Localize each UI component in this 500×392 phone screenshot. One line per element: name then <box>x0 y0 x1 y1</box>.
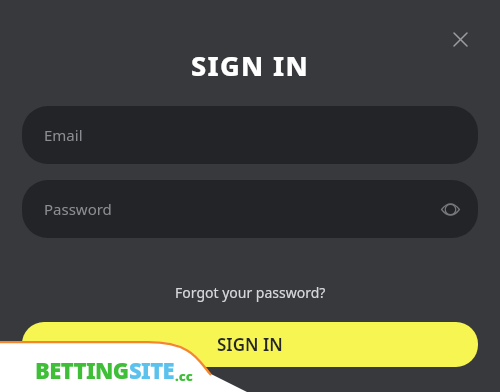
button[interactable]: SIGN IN <box>22 322 478 367</box>
button[interactable]: Show password <box>433 192 467 226</box>
staticText: SIGN IN <box>217 333 283 356</box>
staticText: SIGN IN <box>191 47 309 84</box>
button[interactable]: Forgot your password? <box>165 279 336 306</box>
button[interactable]: Password <box>22 180 478 238</box>
staticText: Forgot your password? <box>175 283 326 302</box>
staticText: SITE <box>129 355 175 385</box>
staticText: .cc <box>175 367 193 385</box>
button[interactable]: Close <box>444 23 476 55</box>
button[interactable]: Email <box>22 106 478 164</box>
staticText: BETTING <box>35 355 129 385</box>
staticText: Password <box>44 199 112 219</box>
staticText: Email <box>44 125 83 145</box>
